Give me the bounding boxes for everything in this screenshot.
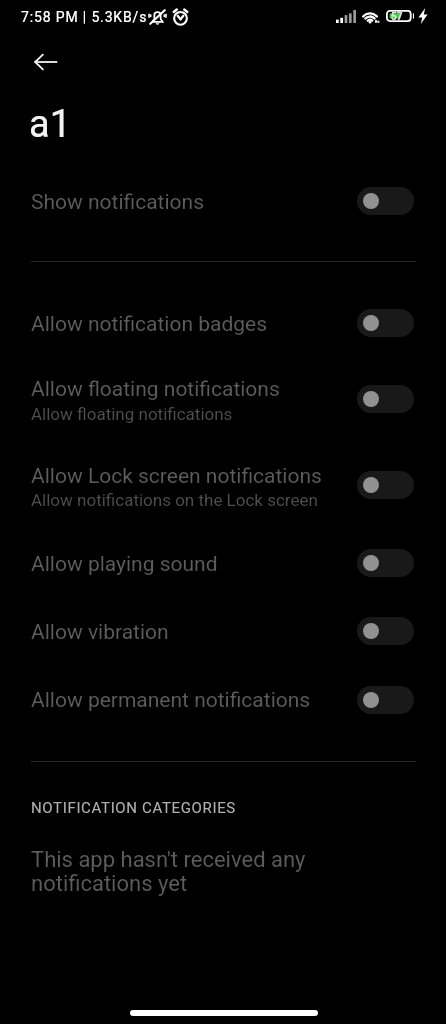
staticText: 57 xyxy=(391,11,403,23)
button[interactable]: Allow floating notifications xyxy=(0,356,446,440)
button[interactable]: Allow permanent notifications xyxy=(357,686,414,714)
staticText: Allow floating notifications xyxy=(31,404,233,424)
staticText: Allow floating notifications xyxy=(31,377,280,402)
button[interactable]: Allow playing sound xyxy=(357,549,414,577)
button[interactable]: Allow playing sound xyxy=(0,526,446,594)
staticText: Allow playing sound xyxy=(31,552,218,577)
button[interactable]: Show notifications xyxy=(357,187,414,215)
staticText: NOTIFICATION CATEGORIES xyxy=(31,799,236,817)
button[interactable]: Allow floating notifications xyxy=(357,385,414,413)
staticText: Show notifications xyxy=(31,190,204,215)
staticText: Allow Lock screen notifications xyxy=(31,464,322,489)
button[interactable]: Allow vibration xyxy=(0,594,446,662)
staticText: Allow permanent notifications xyxy=(31,688,311,713)
button[interactable]: Allow notification badges xyxy=(0,292,446,356)
staticText: Allow vibration xyxy=(31,620,169,645)
button[interactable]: Allow permanent notifications xyxy=(0,662,446,730)
button[interactable]: Back xyxy=(22,38,70,86)
staticText: This app hasn't received any notificatio… xyxy=(31,847,306,896)
staticText: Allow notification badges xyxy=(31,312,268,337)
staticText: Allow notifications on the Lock screen xyxy=(31,490,318,510)
button[interactable]: Allow vibration xyxy=(357,617,414,645)
button[interactable]: Allow Lock screen notifications xyxy=(357,471,414,499)
staticText: a1 xyxy=(29,102,72,147)
staticText: 7:58 PM | 5.3KB/s xyxy=(21,9,148,25)
button[interactable]: Show notifications xyxy=(0,172,446,234)
button[interactable]: Allow notification badges xyxy=(357,309,414,337)
button[interactable]: Allow Lock screen notifications xyxy=(0,440,446,526)
